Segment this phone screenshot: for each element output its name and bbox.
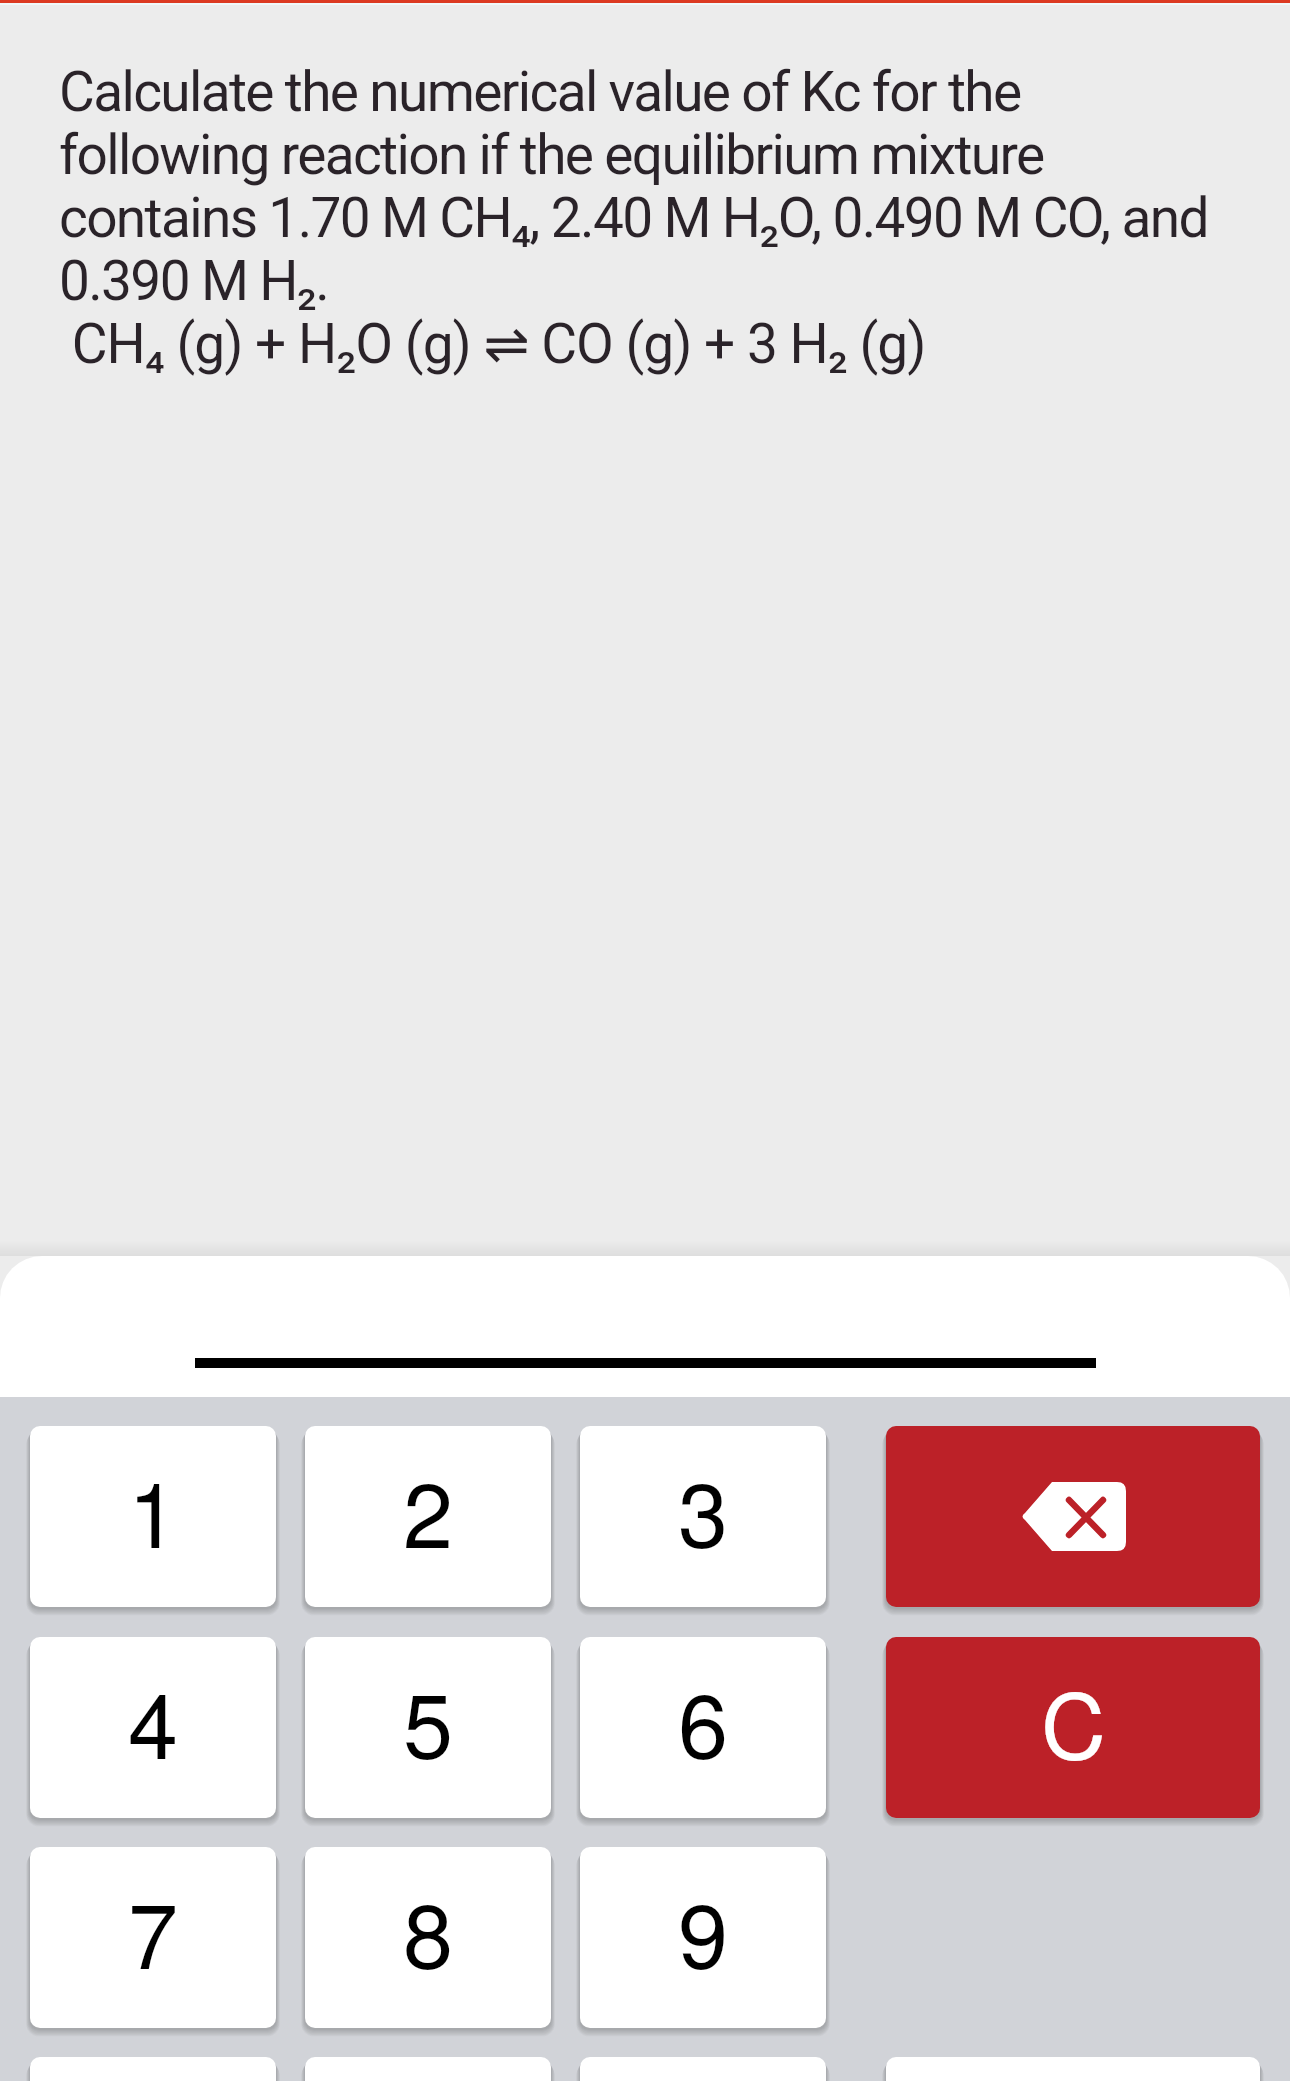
staticText: CH₄ (g) + H₂O (g) ⇌ CO (g) + 3 H₂ (g) <box>59 313 926 376</box>
button[interactable]: 9 <box>580 1847 826 2028</box>
button[interactable]: 5 <box>305 1637 551 1818</box>
staticText: 8 <box>403 1866 454 1995</box>
button[interactable]: 4 <box>30 1637 276 1818</box>
staticText: 5 <box>403 1656 454 1785</box>
button[interactable]: 8 <box>305 1847 551 2028</box>
button[interactable]: 0 <box>305 2057 551 2081</box>
button[interactable]: 1 <box>30 1426 276 1607</box>
staticText: 4 <box>128 1656 179 1785</box>
button[interactable]: Backspace <box>886 1426 1260 1607</box>
staticText: 1 <box>128 1445 179 1574</box>
button[interactable]: Clear <box>886 1637 1260 1818</box>
staticText: 9 <box>678 1866 729 1995</box>
button[interactable]: 6 <box>580 1637 826 1818</box>
button[interactable]: − <box>580 2057 826 2081</box>
staticText: 2 <box>403 1445 454 1574</box>
staticText: C <box>1041 1656 1106 1785</box>
staticText: 3 <box>678 1445 729 1574</box>
button[interactable]: 3 <box>580 1426 826 1607</box>
button[interactable]: 7 <box>30 1847 276 2028</box>
staticText: Calculate the numerical value of Kc for … <box>59 61 1208 313</box>
button[interactable]: 2 <box>305 1426 551 1607</box>
staticText: 7 <box>128 1866 179 1995</box>
staticText: 6 <box>678 1656 729 1785</box>
button[interactable]: . <box>30 2057 276 2081</box>
button[interactable]: Enter <box>886 2057 1260 2081</box>
